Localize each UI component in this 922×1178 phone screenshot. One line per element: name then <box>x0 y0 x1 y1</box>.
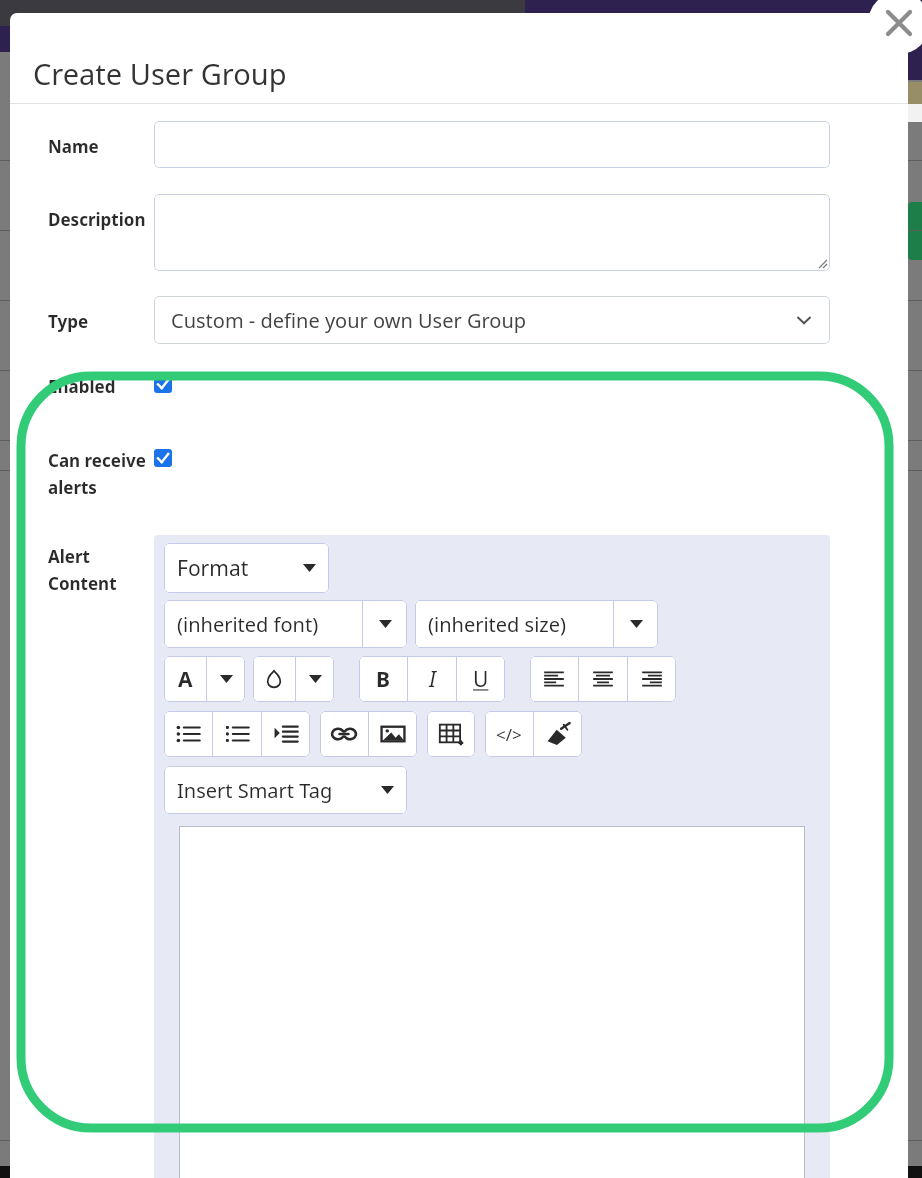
button[interactable]: Insert link <box>320 711 368 757</box>
button[interactable]: Close <box>868 0 922 54</box>
button[interactable]: Highlight color <box>253 656 295 702</box>
button[interactable]: (inherited font) <box>164 600 407 648</box>
button[interactable]: Text color <box>164 656 206 702</box>
button[interactable]: Checkbox, checked <box>154 449 172 467</box>
button[interactable]: Alert content editor <box>179 826 805 1178</box>
button[interactable]: Numbered list <box>213 711 261 757</box>
staticText: Can receive alerts <box>48 449 154 499</box>
button[interactable]: (inherited size) <box>415 600 658 648</box>
staticText: B <box>376 665 390 694</box>
button[interactable]: Underline <box>457 656 505 702</box>
staticText: Name <box>48 135 154 158</box>
button[interactable]: Bold <box>359 656 407 702</box>
button[interactable]: Insert table <box>427 711 475 757</box>
staticText: Custom - define your own User Group <box>171 307 527 334</box>
button[interactable]: Custom - define your own User Group <box>154 296 830 344</box>
staticText: (inherited font) <box>177 611 319 638</box>
staticText: (inherited size) <box>428 611 566 638</box>
staticText: A <box>178 665 193 694</box>
staticText: Format <box>177 554 249 583</box>
button[interactable]: Insert Smart Tag <box>164 766 407 814</box>
button[interactable]: Clear formatting <box>534 711 582 757</box>
button[interactable]: Bulleted list <box>164 711 212 757</box>
staticText: </> <box>496 723 522 746</box>
button[interactable]: Insert image <box>369 711 417 757</box>
staticText: U <box>473 665 489 694</box>
button[interactable]: Italic <box>408 656 456 702</box>
staticText: Alert Content <box>48 545 154 595</box>
button[interactable]: Format <box>164 543 329 593</box>
button[interactable]: Checkbox, checked <box>154 375 172 393</box>
button[interactable]: Align center <box>579 656 627 702</box>
staticText: I <box>429 665 436 694</box>
button[interactable]: Text color options <box>207 656 245 702</box>
staticText: Enabled <box>48 375 154 398</box>
staticText: Insert Smart Tag <box>177 777 333 804</box>
button[interactable]: Indent <box>262 711 310 757</box>
button[interactable]: Source code <box>485 711 533 757</box>
button[interactable]: Highlight options <box>296 656 334 702</box>
button[interactable]: Align left <box>530 656 578 702</box>
button[interactable]: Name input <box>154 121 830 168</box>
button[interactable]: Description input <box>154 194 830 271</box>
staticText: Create User Group <box>33 54 287 93</box>
staticText: Description <box>48 208 154 231</box>
button[interactable]: Align right <box>628 656 676 702</box>
staticText: Type <box>48 310 154 333</box>
